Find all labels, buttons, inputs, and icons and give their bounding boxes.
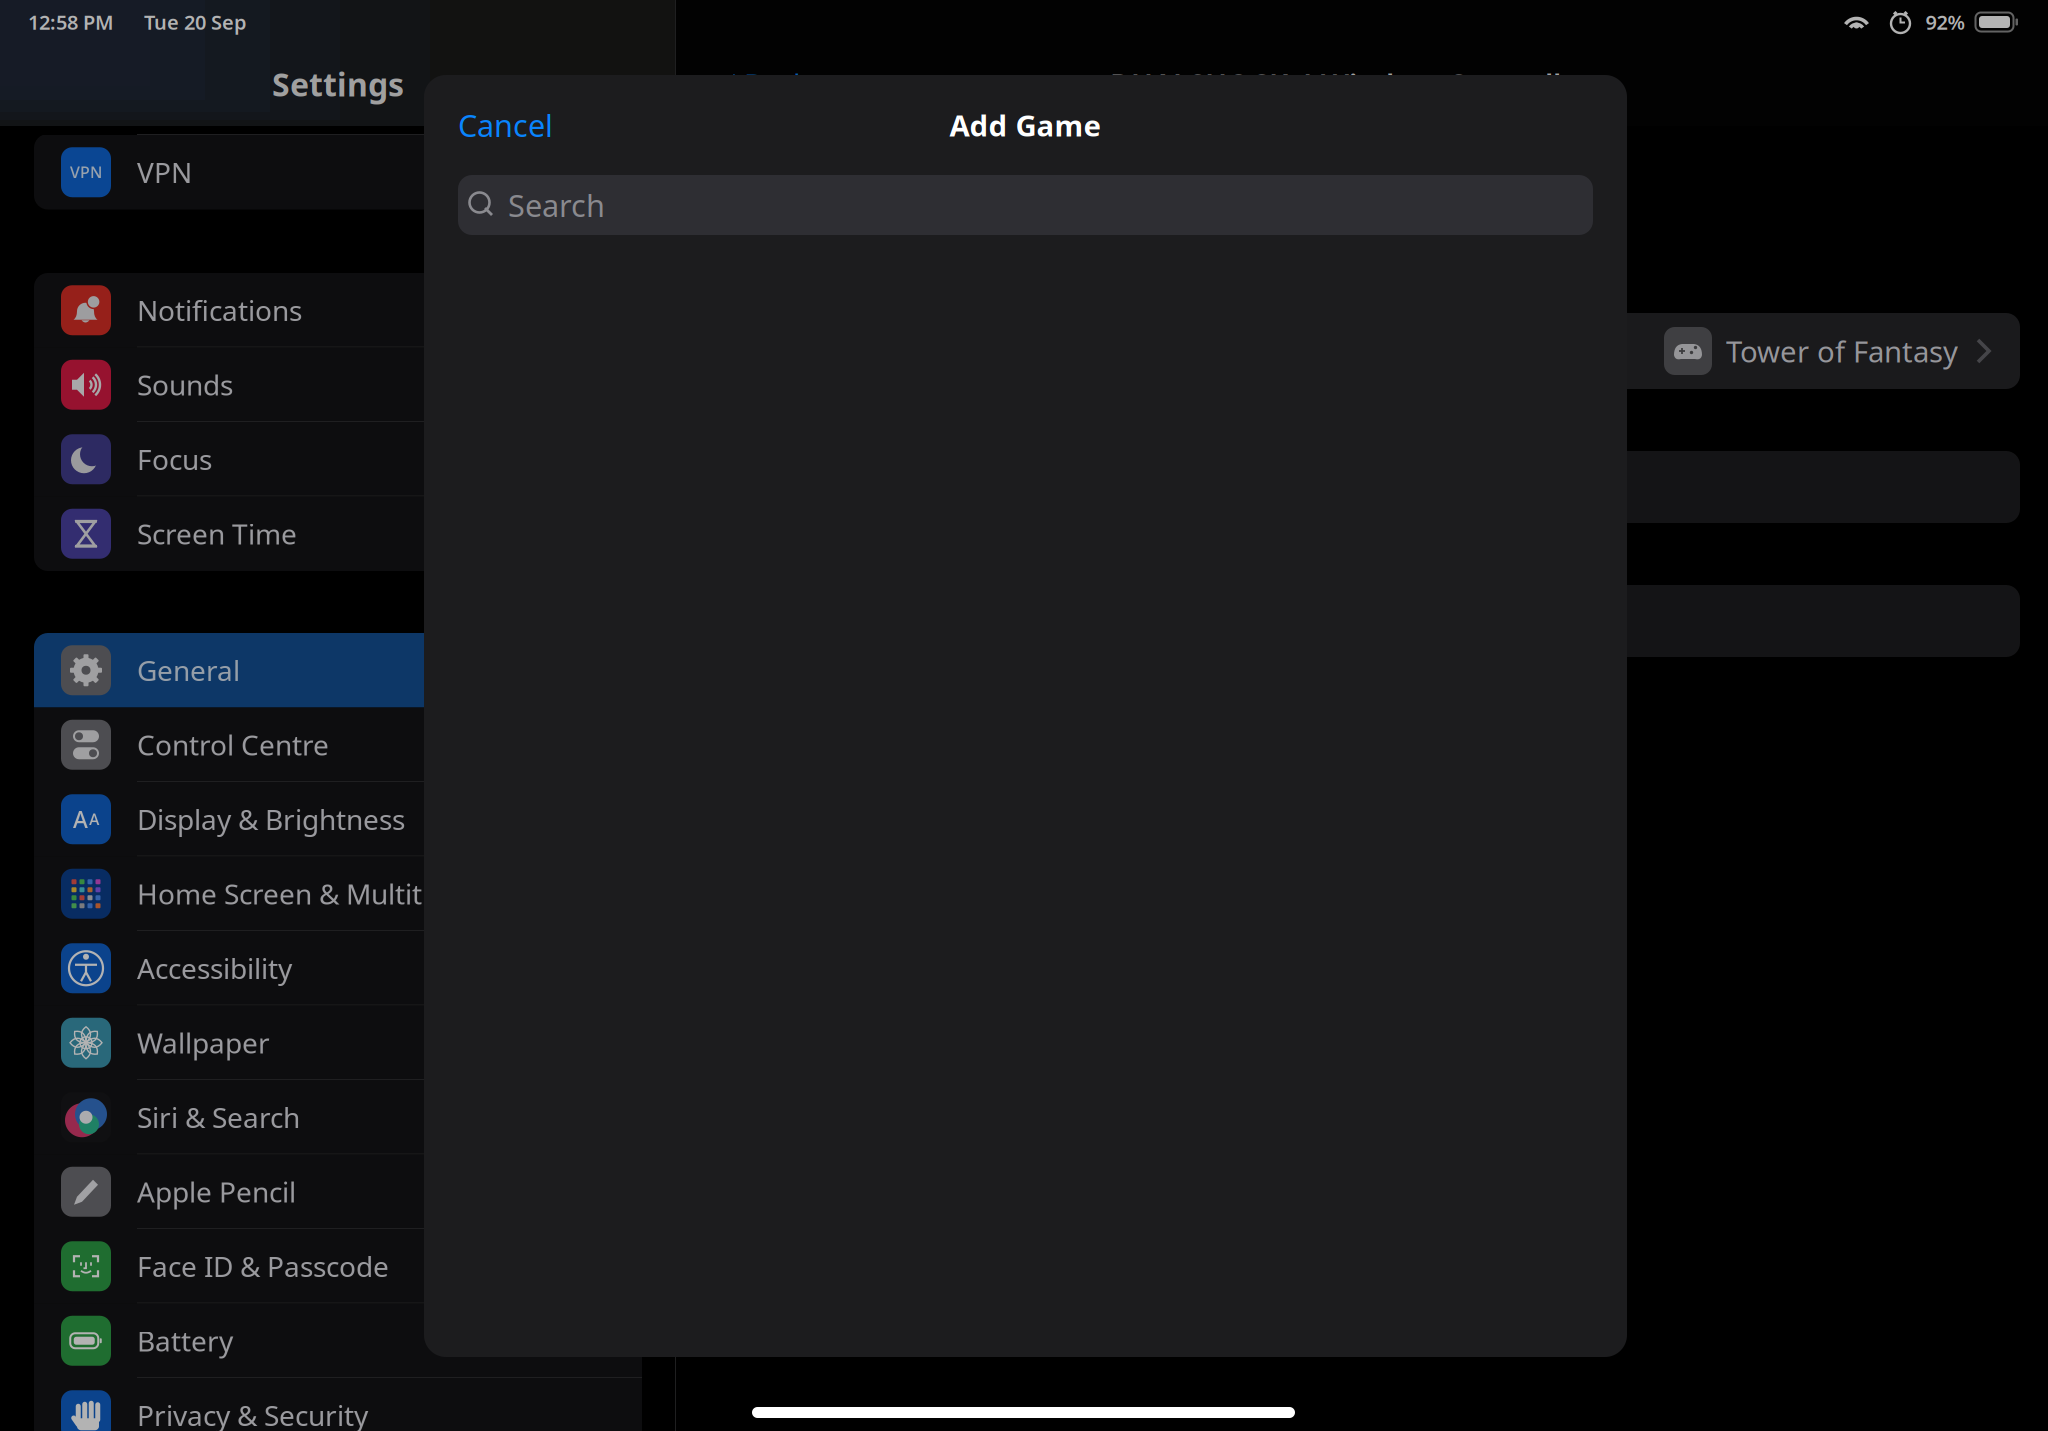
staticText: Back <box>744 64 809 103</box>
button[interactable]: VPN <box>34 135 642 209</box>
button[interactable]: Sounds <box>34 347 642 422</box>
staticText: Sounds <box>137 366 233 403</box>
staticText: 12:58 PM <box>28 9 114 35</box>
staticText: Battery <box>137 1322 233 1359</box>
staticText: Accessibility <box>137 950 292 987</box>
button[interactable]: Apple Pencil <box>34 1154 642 1229</box>
button[interactable]: Wallpaper <box>34 1005 642 1080</box>
staticText: DUALSHOCK 4 Wireless Controller <box>1110 64 1591 103</box>
staticText: VPN <box>70 162 102 183</box>
staticText: Display & Brightness <box>137 801 405 838</box>
button[interactable]: Notifications <box>34 273 642 347</box>
button[interactable]: Back <box>722 64 809 103</box>
button[interactable]: Face ID & Passcode <box>34 1229 642 1303</box>
staticText: Control Centre <box>137 726 329 763</box>
staticText: 92% <box>1925 9 1965 35</box>
button[interactable]: Privacy & Security <box>34 1378 642 1431</box>
staticText: Focus <box>137 441 212 478</box>
button[interactable]: Screen Time <box>34 496 642 571</box>
button[interactable]: A <box>34 782 642 856</box>
staticText: Tower of Fantasy <box>1726 331 1958 370</box>
button[interactable]: Control Centre <box>34 707 642 782</box>
button[interactable]: General <box>34 633 642 707</box>
staticText: General <box>137 652 240 689</box>
button[interactable]: Siri & Search <box>34 1080 642 1154</box>
button[interactable]: Accessibility <box>34 931 642 1005</box>
staticText: Search <box>508 185 605 225</box>
button[interactable]: Cancel <box>458 93 573 157</box>
button[interactable]: Battery <box>34 1303 642 1378</box>
staticText: Screen Time <box>137 515 297 552</box>
staticText: Siri & Search <box>137 1099 300 1136</box>
staticText: Wallpaper <box>137 1024 270 1061</box>
staticText: A <box>73 804 88 834</box>
staticText: Face ID & Passcode <box>137 1248 389 1285</box>
staticText: Apple Pencil <box>137 1173 296 1210</box>
staticText: Privacy & Security <box>137 1397 368 1431</box>
staticText: Settings <box>272 63 404 105</box>
button[interactable]: Home Screen & Multit <box>34 856 642 931</box>
staticText: Tue 20 Sep <box>144 9 247 35</box>
staticText: Add Game <box>949 105 1101 144</box>
staticText: Home Screen & Multit <box>137 875 422 912</box>
button[interactable]: Focus <box>34 422 642 496</box>
staticText: A <box>89 809 99 830</box>
button[interactable]: Tower of Fantasy <box>706 313 2020 389</box>
staticText: Cancel <box>458 105 553 145</box>
staticText: VPN <box>137 154 192 191</box>
staticText: Notifications <box>137 292 302 329</box>
